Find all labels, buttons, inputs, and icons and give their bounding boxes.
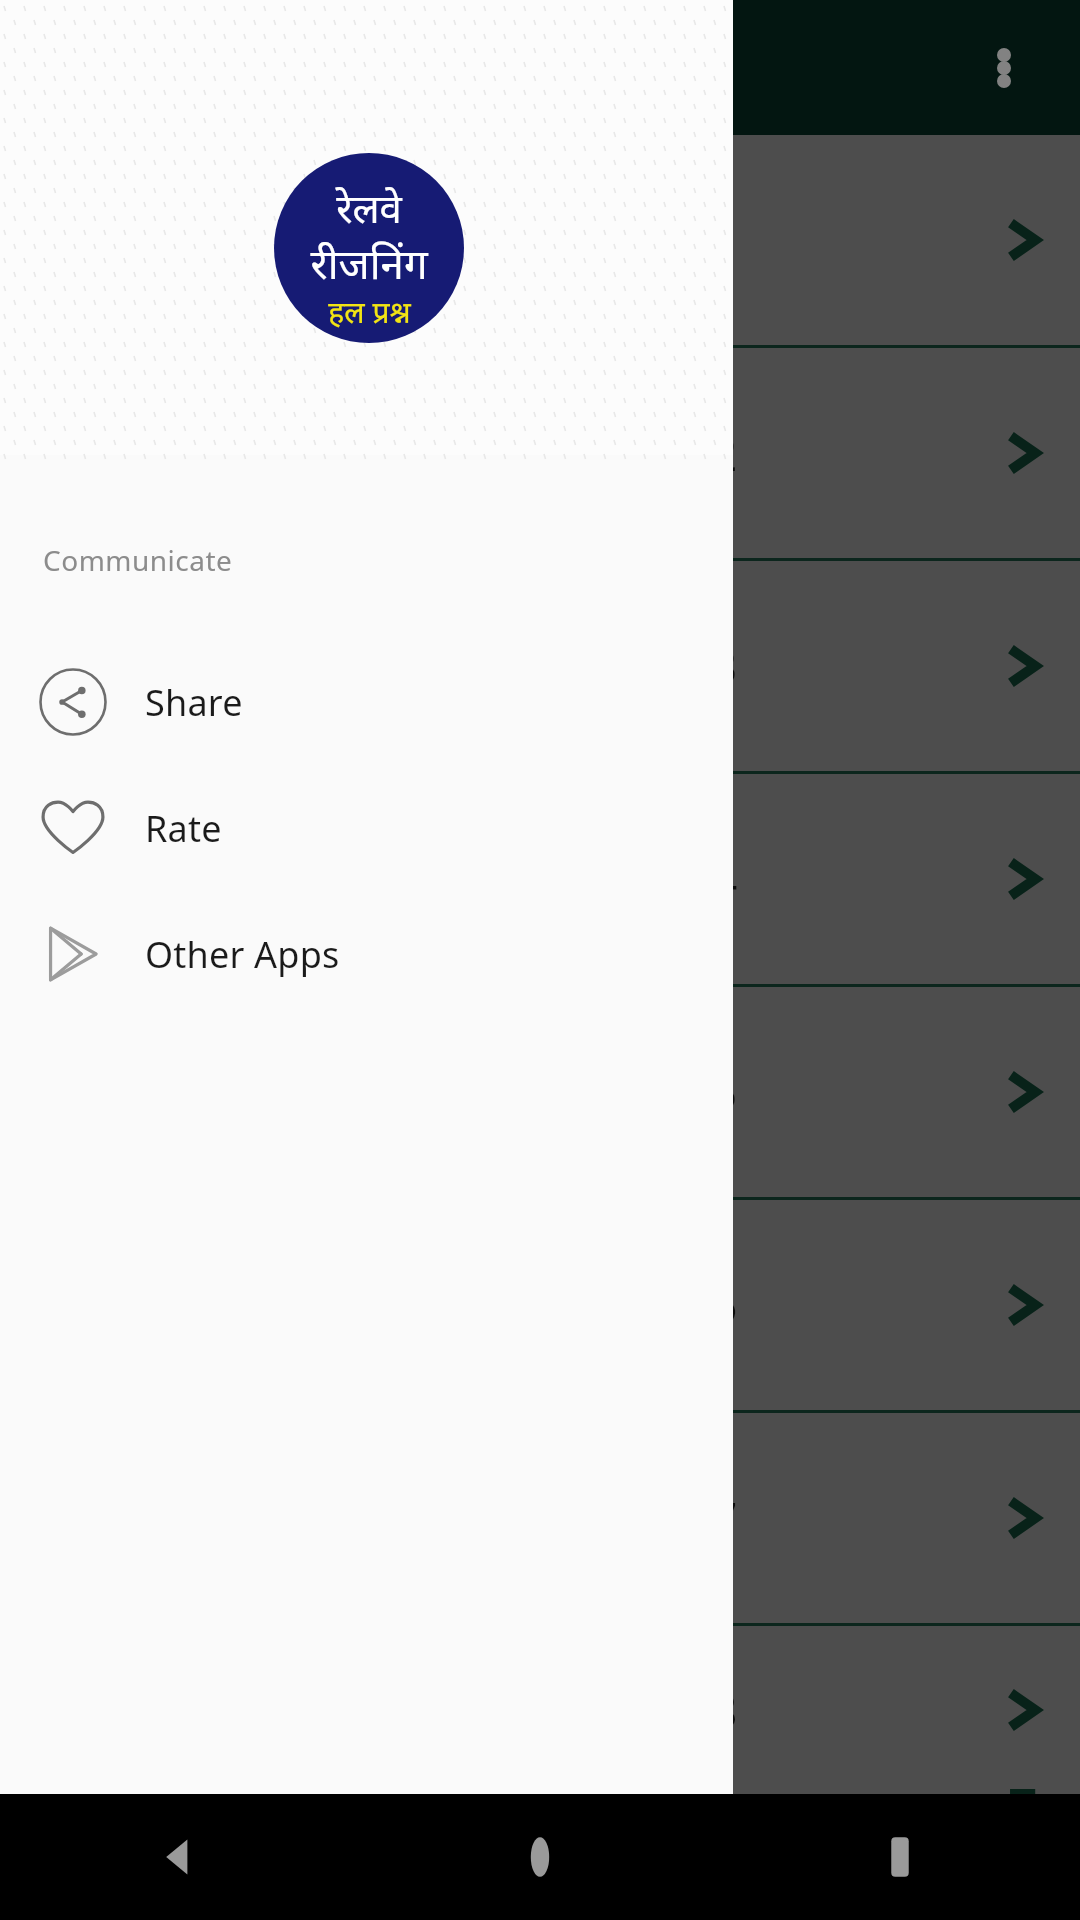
button[interactable]: सेट - 7 [0, 1413, 1080, 1626]
staticText: सेट - 8 [618, 1679, 738, 1742]
button[interactable]: सेट - 5 [0, 987, 1080, 1200]
button[interactable]: सेट - 4 [0, 774, 1080, 987]
staticText: रीजनिंग [310, 234, 428, 291]
button[interactable]: Rate [0, 765, 733, 891]
button[interactable]: सेट - 2 [0, 348, 1080, 561]
button[interactable]: सेट - 8 [0, 1626, 1080, 1794]
staticText: Other Apps [145, 930, 340, 979]
button[interactable]: सेट - 6 [0, 1200, 1080, 1413]
staticText: सेट - 3 [618, 635, 738, 698]
staticText: रेलवे [336, 180, 402, 234]
staticText: सेट - 4 [618, 848, 738, 911]
staticText: हल प्रश्न [328, 291, 411, 332]
staticText: सेट - 5 [618, 1061, 738, 1124]
staticText: सेट - 1 [618, 209, 738, 272]
button[interactable]: रेलवे [274, 153, 464, 343]
staticText: Rate [145, 804, 222, 853]
staticText: सेट - 2 [618, 422, 738, 485]
button[interactable]: More options [956, 20, 1052, 116]
staticText: Share [145, 678, 243, 727]
button[interactable]: Recent apps [720, 1794, 1080, 1920]
button[interactable]: Other Apps [0, 891, 733, 1017]
button[interactable]: Back [0, 1794, 360, 1920]
button[interactable]: सेट - 1 [0, 135, 1080, 348]
button[interactable]: Home [360, 1794, 720, 1920]
staticText: Communicate [43, 541, 233, 579]
staticText: सेट - 7 [618, 1487, 738, 1550]
button[interactable]: सेट - 3 [0, 561, 1080, 774]
staticText: सेट - 6 [618, 1274, 738, 1337]
button[interactable]: Share [0, 639, 733, 765]
